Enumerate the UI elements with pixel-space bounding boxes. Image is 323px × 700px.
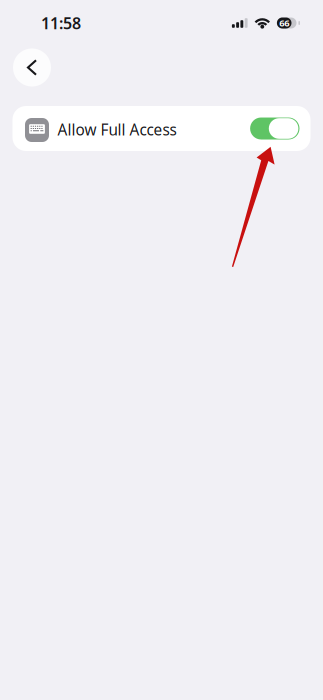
staticText: Allow Full Access [57, 119, 176, 140]
button[interactable]: Allow Full Access, on [250, 117, 299, 139]
button[interactable]: Back [13, 48, 51, 86]
staticText: 66 [279, 17, 289, 29]
button[interactable]: Allow Full Access [12, 106, 310, 151]
staticText: 11:58 [41, 12, 81, 34]
